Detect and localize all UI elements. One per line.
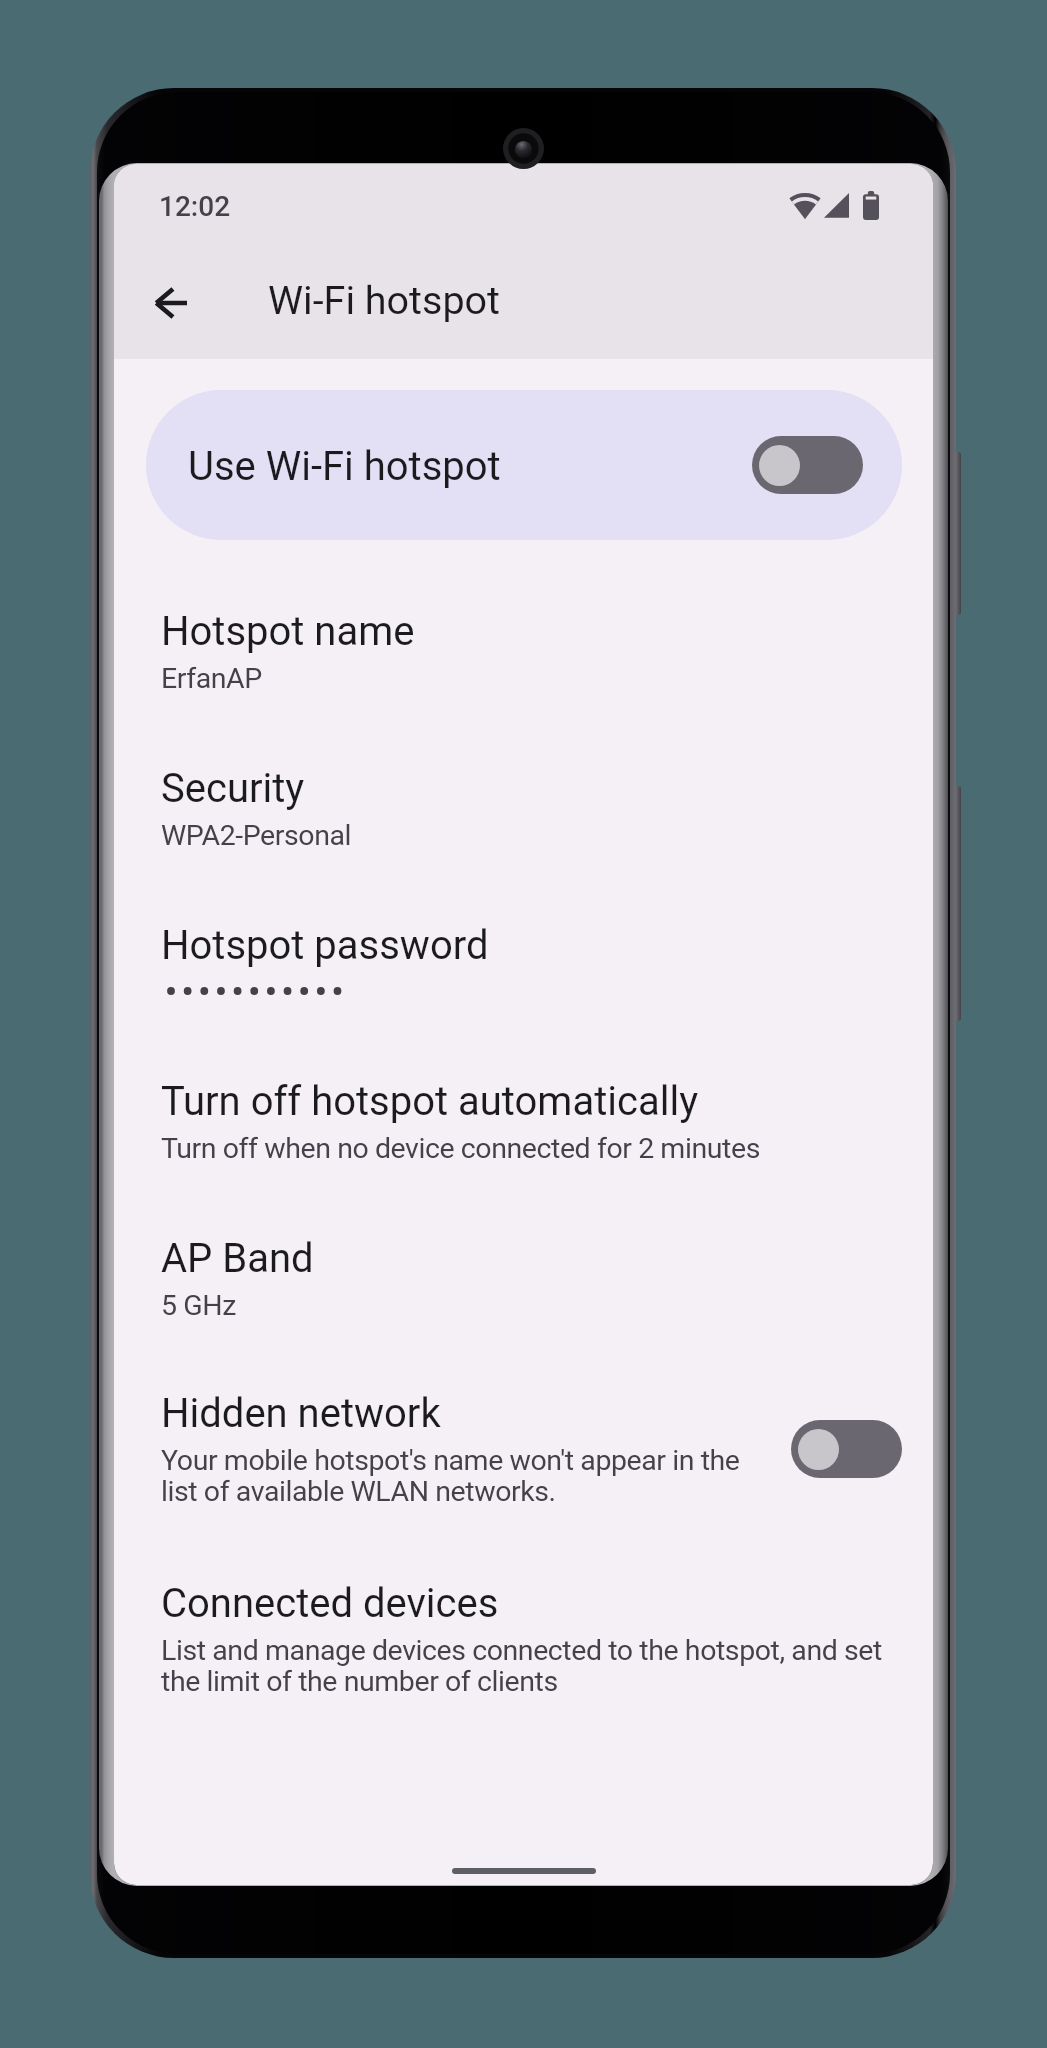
button[interactable]: Back <box>132 265 208 341</box>
button[interactable]: Use Wi-Fi hotspot, off <box>752 436 863 494</box>
staticText: 12:02 <box>159 190 231 223</box>
staticText: Wi-Fi hotspot <box>268 277 501 323</box>
staticText: Turn off hotspot automatically <box>161 1078 699 1125</box>
staticText: Your mobile hotspot's name won't appear … <box>161 1444 761 1508</box>
button[interactable]: Hotspot name <box>114 584 933 721</box>
button[interactable]: Hidden network <box>114 1366 933 1534</box>
button[interactable]: AP Band <box>114 1211 933 1348</box>
button[interactable]: Connected devices <box>114 1556 933 1724</box>
staticText: Hidden network <box>161 1390 441 1437</box>
button[interactable]: Hidden network, off <box>791 1420 902 1478</box>
staticText: Security <box>161 765 305 812</box>
button[interactable]: Security <box>114 741 933 878</box>
staticText: Connected devices <box>161 1580 499 1627</box>
staticText: 5 GHz <box>161 1289 236 1322</box>
staticText: List and manage devices connected to the… <box>161 1634 891 1698</box>
staticText: Use Wi-Fi hotspot <box>188 443 501 490</box>
button[interactable]: Hotspot password <box>114 898 933 1028</box>
staticText: ErfanAP <box>161 662 262 695</box>
staticText: WPA2-Personal <box>161 819 352 852</box>
staticText: Hotspot name <box>161 608 415 655</box>
staticText: Turn off when no device connected for 2 … <box>161 1132 760 1165</box>
button[interactable]: Use Wi-Fi hotspot <box>146 390 902 540</box>
button[interactable]: Turn off hotspot automatically <box>114 1054 933 1191</box>
staticText: AP Band <box>161 1235 314 1282</box>
staticText: Hotspot password <box>161 922 489 969</box>
